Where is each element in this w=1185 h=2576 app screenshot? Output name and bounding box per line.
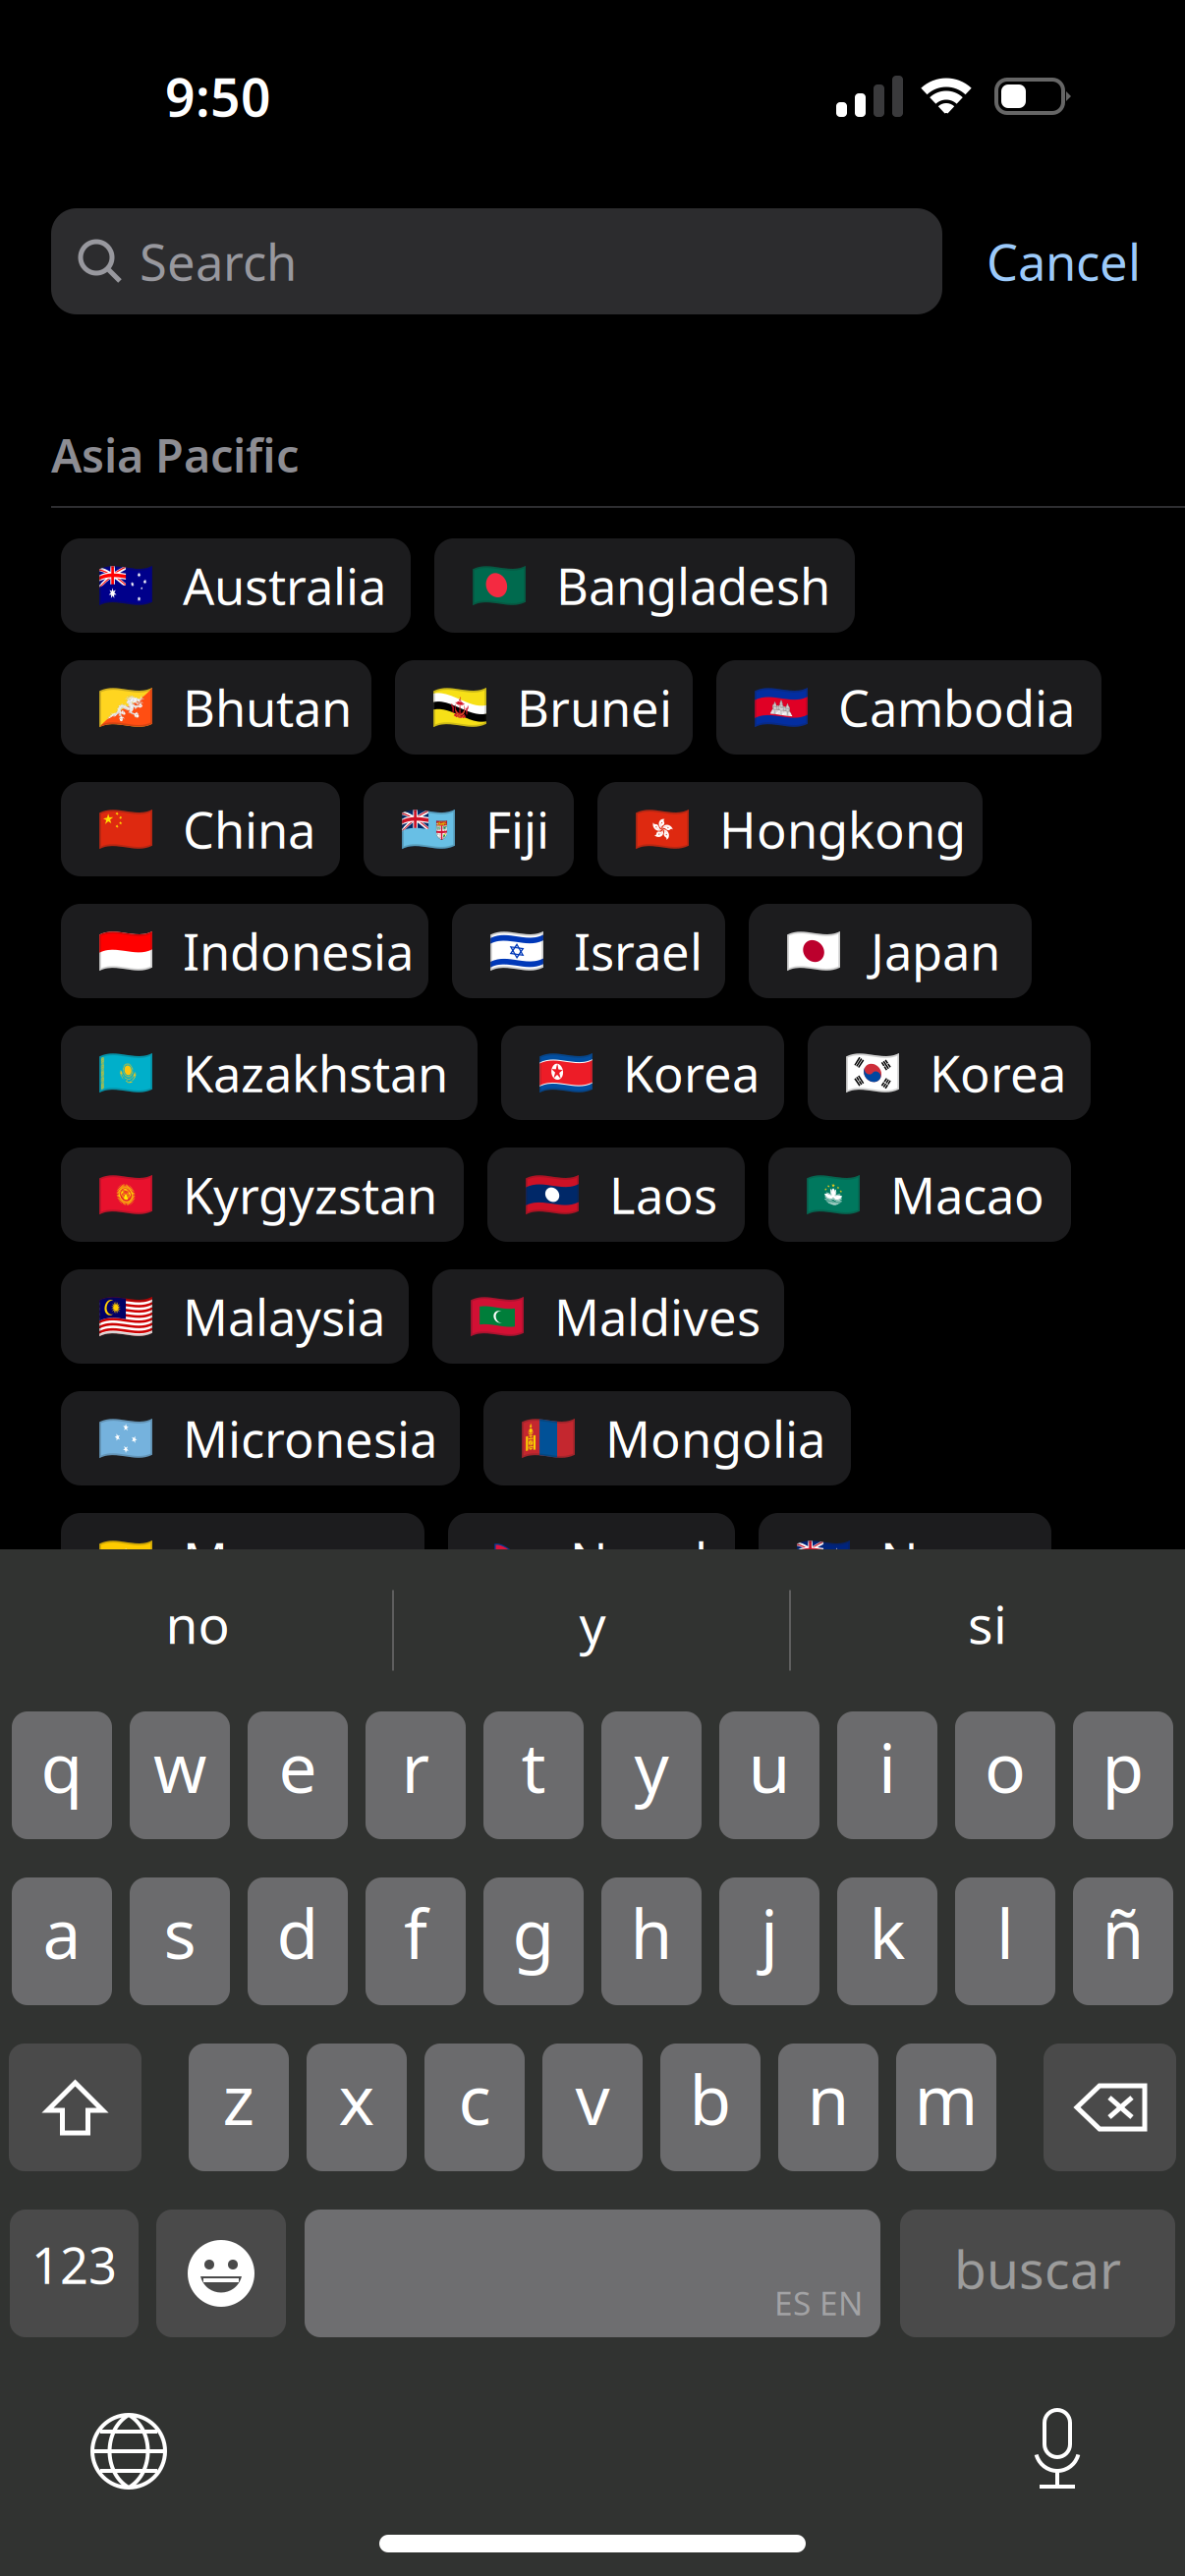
button[interactable]: 🇰🇷 — [808, 1026, 1091, 1120]
button[interactable]: 🇫🇲 — [61, 1391, 460, 1485]
staticText: p — [1102, 1721, 1144, 1812]
staticText: New — [880, 1527, 986, 1593]
staticText: Asia Pacific — [51, 424, 299, 485]
staticText: v — [575, 2053, 610, 2144]
button[interactable]: ñ — [1073, 1877, 1173, 2005]
button[interactable]: 🇦🇺 — [61, 538, 411, 633]
button[interactable]: 🇧🇹 — [61, 660, 371, 755]
staticText: 🇧🇳 — [431, 681, 488, 734]
button[interactable]: 🇮🇩 — [61, 904, 428, 998]
button[interactable]: 🇧🇳 — [395, 660, 693, 755]
staticText: 🇧🇩 — [471, 559, 528, 612]
staticText: Japan — [871, 918, 1000, 984]
button[interactable]: 🇨🇳 — [61, 782, 340, 876]
button[interactable]: a — [12, 1877, 112, 2005]
staticText: 🇳🇿 — [795, 1534, 852, 1586]
staticText: z — [223, 2053, 255, 2144]
staticText: Myanmar — [183, 1527, 406, 1593]
button[interactable]: 🇲🇴 — [768, 1148, 1071, 1242]
staticText: w — [153, 1721, 206, 1812]
button[interactable]: Dictation — [1028, 2410, 1087, 2492]
button[interactable]: q — [12, 1711, 112, 1839]
button[interactable]: 🇳🇿 — [759, 1513, 1051, 1607]
button[interactable]: 🇮🇱 — [452, 904, 725, 998]
button[interactable]: 🇳🇵 — [448, 1513, 735, 1607]
staticText: Macao — [890, 1162, 1044, 1228]
button[interactable]: 🇰🇭 — [716, 660, 1101, 755]
button[interactable]: b — [660, 2044, 761, 2171]
button[interactable]: p — [1073, 1711, 1173, 1839]
staticText: China — [183, 796, 315, 862]
staticText: Bhutan — [183, 674, 352, 740]
button[interactable]: n — [778, 2044, 878, 2171]
staticText: no — [166, 1589, 229, 1658]
button[interactable]: 🇯🇵 — [749, 904, 1032, 998]
button[interactable]: v — [542, 2044, 643, 2171]
staticText: 🇰🇭 — [753, 681, 810, 734]
button[interactable]: w — [130, 1711, 230, 1839]
staticText: si — [968, 1589, 1007, 1658]
staticText: ñ — [1102, 1887, 1144, 1978]
staticText: 🇲🇾 — [97, 1290, 154, 1343]
staticText: ES EN — [774, 2281, 863, 2324]
staticText: a — [43, 1887, 81, 1978]
staticText: o — [985, 1721, 1026, 1812]
button[interactable]: i — [837, 1711, 937, 1839]
button[interactable]: Shift — [9, 2044, 141, 2171]
staticText: Israel — [574, 918, 703, 984]
button[interactable]: 🇲🇾 — [61, 1269, 409, 1364]
staticText: Korea — [623, 1040, 760, 1106]
button[interactable]: x — [307, 2044, 407, 2171]
button[interactable]: o — [955, 1711, 1055, 1839]
button[interactable]: 123 — [10, 2210, 139, 2337]
button[interactable]: Delete — [1044, 2044, 1176, 2171]
staticText: 🇳🇵 — [484, 1534, 541, 1586]
button[interactable]: u — [719, 1711, 819, 1839]
button[interactable]: no — [1, 1569, 394, 1678]
button[interactable]: l — [955, 1877, 1055, 2005]
staticText: Brunei — [517, 674, 672, 740]
staticText: m — [914, 2053, 978, 2144]
staticText: r — [401, 1721, 430, 1812]
staticText: i — [878, 1721, 896, 1812]
button[interactable]: 🇭🇰 — [597, 782, 983, 876]
button[interactable]: 🇲🇳 — [483, 1391, 851, 1485]
staticText: 🇭🇰 — [634, 803, 691, 855]
button[interactable]: Next keyboard — [89, 2412, 168, 2491]
button[interactable]: Emoji keyboard — [156, 2210, 286, 2337]
button[interactable]: z — [189, 2044, 289, 2171]
button[interactable]: 🇰🇬 — [61, 1148, 464, 1242]
button[interactable]: buscar — [900, 2210, 1175, 2337]
button[interactable]: Space — [305, 2210, 880, 2337]
button[interactable]: k — [837, 1877, 937, 2005]
staticText: Search — [140, 228, 297, 294]
button[interactable]: j — [719, 1877, 819, 2005]
staticText: y — [579, 1589, 606, 1658]
button[interactable]: s — [130, 1877, 230, 2005]
button[interactable]: Cancel — [942, 208, 1185, 314]
button[interactable]: y — [601, 1711, 702, 1839]
button[interactable]: Search — [51, 208, 942, 314]
staticText: l — [996, 1887, 1014, 1978]
button[interactable]: si — [791, 1569, 1184, 1678]
staticText: 🇫🇯 — [400, 803, 457, 855]
button[interactable]: 🇰🇵 — [501, 1026, 784, 1120]
button[interactable]: 🇱🇦 — [487, 1148, 745, 1242]
button[interactable]: 🇰🇿 — [61, 1026, 478, 1120]
button[interactable]: h — [601, 1877, 702, 2005]
staticText: Cambodia — [838, 674, 1075, 740]
button[interactable]: e — [248, 1711, 348, 1839]
button[interactable]: 🇧🇩 — [434, 538, 855, 633]
button[interactable]: t — [483, 1711, 584, 1839]
button[interactable]: 🇫🇯 — [364, 782, 574, 876]
button[interactable]: c — [424, 2044, 525, 2171]
button[interactable]: f — [366, 1877, 466, 2005]
button[interactable]: 🇲🇲 — [61, 1513, 424, 1607]
button[interactable]: 🇲🇻 — [432, 1269, 784, 1364]
staticText: Australia — [183, 552, 386, 619]
button[interactable]: r — [366, 1711, 466, 1839]
button[interactable]: g — [483, 1877, 584, 2005]
button[interactable]: y — [394, 1569, 791, 1678]
button[interactable]: d — [248, 1877, 348, 2005]
button[interactable]: m — [896, 2044, 996, 2171]
